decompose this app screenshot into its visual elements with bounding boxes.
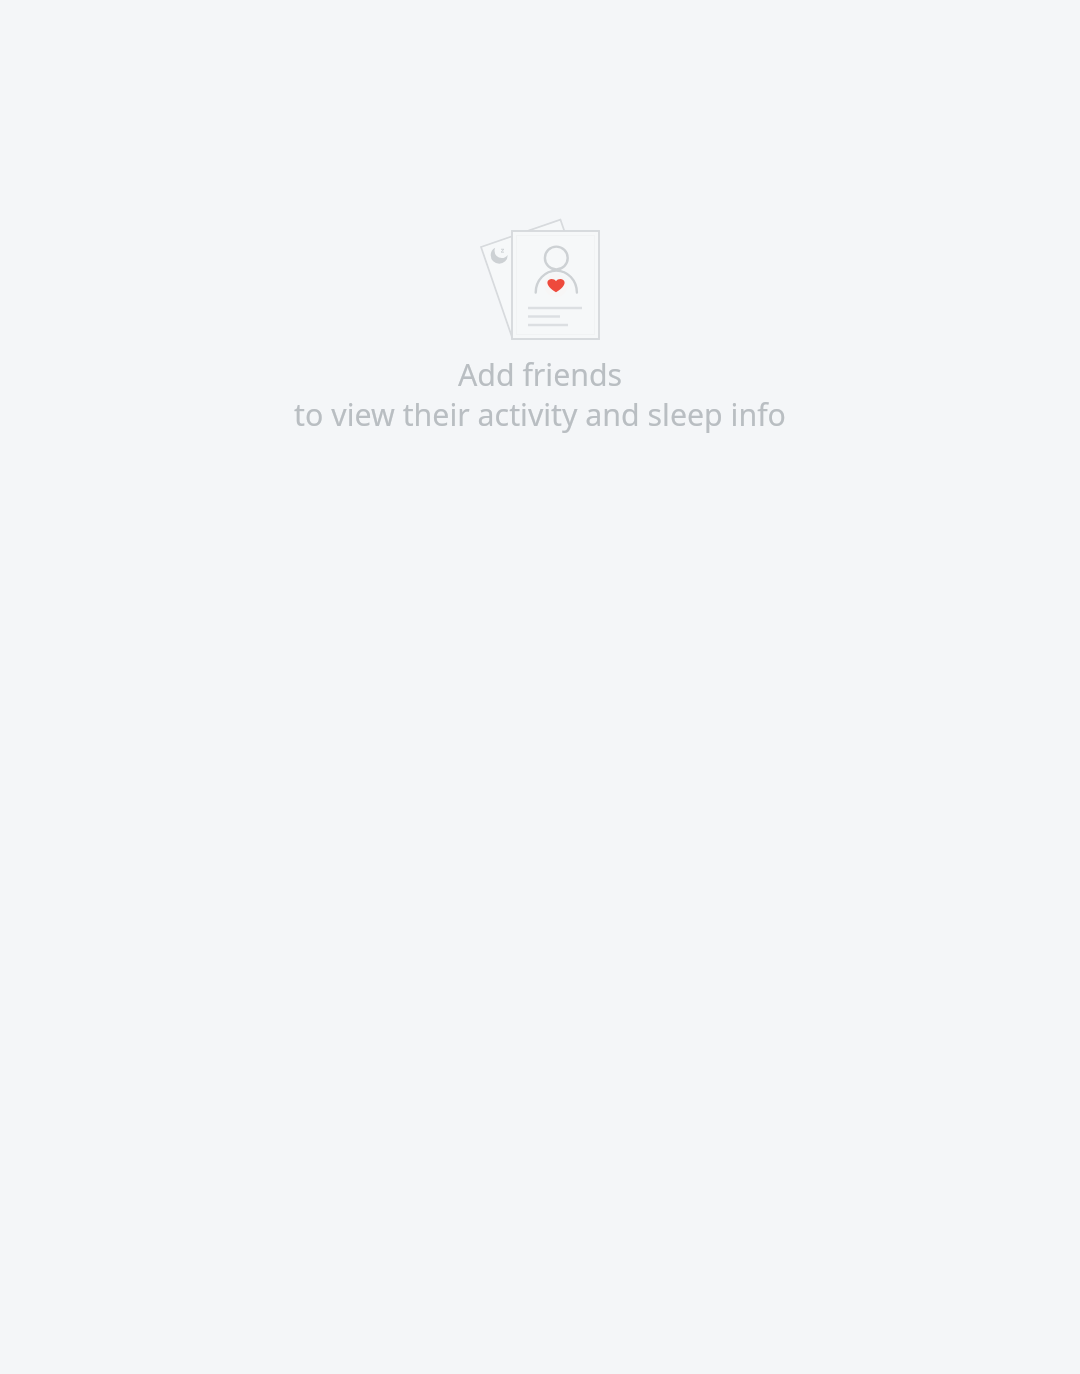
button[interactable]: Friends empty state illustration [476,215,604,347]
staticText: Add friends to view their activity and s… [24,354,1056,434]
